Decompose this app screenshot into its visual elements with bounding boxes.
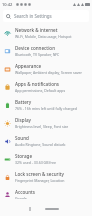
staticText: Lock screen & security — [15, 171, 64, 177]
button[interactable]: Display — [0, 114, 92, 132]
staticText: Network & internet — [15, 27, 58, 33]
button[interactable]: Network & internet — [0, 24, 92, 42]
button[interactable]: Battery — [0, 96, 92, 114]
button[interactable]: Sound — [0, 132, 92, 150]
staticText: App permissions, Default apps — [15, 88, 66, 93]
button[interactable]: Accounts — [0, 186, 92, 202]
staticText: Wi-Fi, Mobile, Data usage, Hotspot — [15, 34, 72, 39]
button[interactable]: Device connection — [0, 42, 92, 60]
staticText: Device connection — [15, 45, 56, 51]
staticText: Wallpaper, Ambient display, Screen saver — [15, 70, 82, 75]
staticText: Google — [15, 196, 27, 199]
staticText: Bluetooth, TV Speaker, NFC — [15, 52, 60, 57]
staticText: 32% used - 33.63 GB free — [15, 160, 56, 165]
staticText: Appearance — [15, 63, 42, 69]
button[interactable]: Apps & notifications — [0, 78, 92, 96]
button[interactable]: Home — [43, 206, 61, 212]
button[interactable]: Lock screen & security — [0, 168, 92, 186]
button[interactable]: Appearance — [0, 60, 92, 78]
staticText: Apps & notifications — [15, 81, 60, 87]
button[interactable]: Back — [26, 205, 34, 213]
staticText: Brightness level, Sleep, Font size — [15, 124, 69, 129]
staticText: Storage — [15, 153, 33, 159]
staticText: Sound — [15, 135, 29, 141]
staticText: Accounts — [15, 189, 36, 195]
button[interactable]: Storage — [0, 150, 92, 168]
staticText: Fingerprint Manager, Location — [15, 178, 65, 183]
staticText: Battery — [15, 99, 32, 105]
staticText: 76% - 16h mins left until fully charged — [15, 106, 77, 111]
button[interactable]: Search in Settings — [3, 10, 89, 22]
staticText: 10:42 — [2, 2, 13, 7]
staticText: Audio Ringtone, Sound disturb — [15, 142, 66, 147]
staticText: Display — [15, 117, 31, 123]
staticText: Search in Settings — [14, 13, 52, 19]
